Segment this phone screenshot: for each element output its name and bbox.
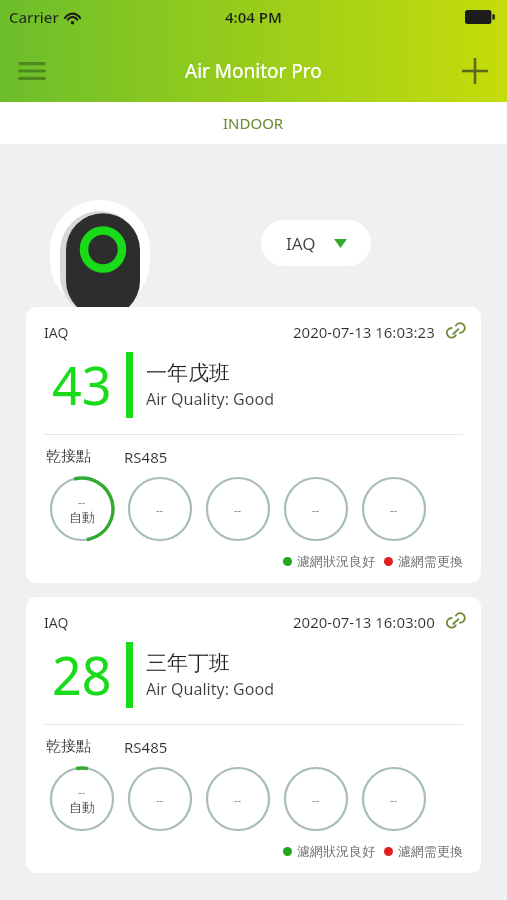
staticText: 乾接點 — [46, 447, 91, 466]
button[interactable]: -- — [204, 475, 272, 543]
staticText: 三年丁班 — [146, 650, 230, 676]
staticText: -- — [312, 792, 320, 807]
staticText: 43 — [52, 349, 112, 420]
staticText: 4:04 PM — [225, 7, 282, 27]
staticText: -- — [234, 792, 242, 807]
staticText: -- — [156, 502, 164, 517]
staticText: IAQ — [44, 323, 69, 342]
staticText: INDOOR — [223, 113, 284, 133]
button[interactable]: -- — [48, 475, 116, 543]
staticText: Air Quality: Good — [146, 388, 274, 410]
staticText: Air Monitor Pro — [185, 58, 322, 84]
staticText: IAQ — [44, 613, 69, 632]
staticText: 乾接點 — [46, 737, 91, 756]
button[interactable]: -- — [282, 475, 350, 543]
staticText: -- — [390, 792, 398, 807]
button[interactable]: IAQ — [261, 220, 371, 266]
button[interactable]: Menu — [8, 47, 56, 95]
button[interactable]: IAQ — [26, 307, 481, 583]
staticText: -- — [78, 494, 86, 509]
staticText: 濾網需更換 — [398, 553, 463, 569]
button[interactable]: INDOOR — [0, 102, 507, 144]
staticText: Air Quality: Good — [146, 678, 274, 700]
button[interactable]: Link — [445, 611, 467, 633]
staticText: 濾網需更換 — [398, 843, 463, 859]
staticText: 2020-07-13 16:03:23 — [293, 322, 435, 342]
button[interactable]: -- — [126, 765, 194, 833]
staticText: IAQ — [286, 232, 316, 255]
staticText: -- — [78, 784, 86, 799]
button[interactable]: -- — [360, 475, 428, 543]
staticText: 28 — [52, 639, 112, 710]
staticText: 自動 — [69, 509, 95, 525]
button[interactable]: Add device — [451, 47, 499, 95]
button[interactable]: -- — [126, 475, 194, 543]
staticText: -- — [312, 502, 320, 517]
staticText: Carrier — [9, 7, 59, 27]
button[interactable]: -- — [48, 765, 116, 833]
button[interactable]: -- — [204, 765, 272, 833]
staticText: -- — [156, 792, 164, 807]
staticText: 濾網狀況良好 — [297, 553, 375, 569]
staticText: RS485 — [124, 447, 168, 467]
staticText: 自動 — [69, 799, 95, 815]
staticText: -- — [234, 502, 242, 517]
button[interactable]: IAQ — [26, 597, 481, 873]
staticText: -- — [390, 502, 398, 517]
staticText: 一年戊班 — [146, 360, 230, 386]
button[interactable]: Link — [445, 321, 467, 343]
staticText: 濾網狀況良好 — [297, 843, 375, 859]
button[interactable]: -- — [360, 765, 428, 833]
staticText: 2020-07-13 16:03:00 — [293, 612, 435, 632]
button[interactable]: -- — [282, 765, 350, 833]
staticText: RS485 — [124, 737, 168, 757]
